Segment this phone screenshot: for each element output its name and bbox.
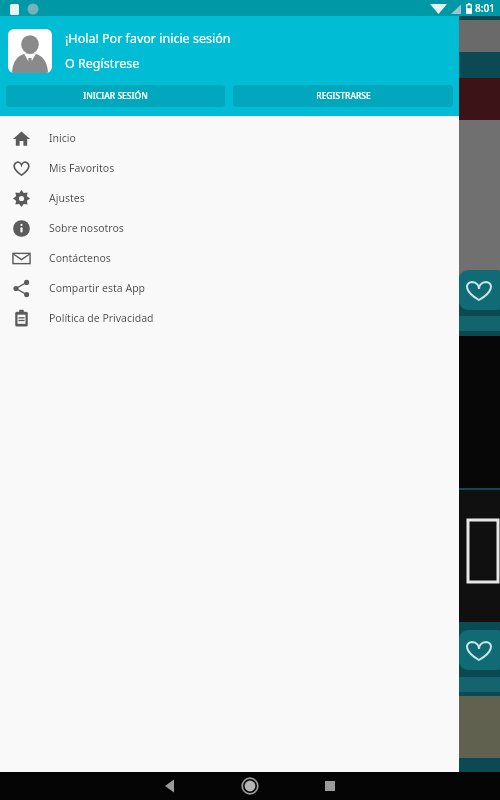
staticText: Inicio — [49, 131, 76, 145]
button[interactable]: REGISTRARSE — [233, 85, 453, 107]
staticText: ¡Hola! Por favor inicie sesión — [65, 30, 231, 47]
button[interactable]: Sobre nosotros — [0, 213, 459, 243]
staticText: Mis Favoritos — [49, 161, 115, 175]
button[interactable]: Contáctenos — [0, 243, 459, 273]
staticText: REGISTRARSE — [316, 90, 371, 102]
staticText: Ajustes — [49, 191, 85, 205]
button[interactable]: Compartir esta App — [0, 273, 459, 303]
staticText: INICIAR SESIÓN — [83, 90, 148, 102]
staticText: Compartir esta App — [49, 281, 146, 295]
button[interactable]: Inicio — [0, 123, 459, 153]
button[interactable]: INICIAR SESIÓN — [6, 85, 225, 107]
staticText: Política de Privacidad — [49, 311, 154, 325]
staticText: Contáctenos — [49, 251, 111, 265]
staticText: Sobre nosotros — [49, 221, 124, 235]
button[interactable]: Mis Favoritos — [0, 153, 459, 183]
staticText: 8:01 — [475, 1, 495, 15]
button[interactable]: Política de Privacidad — [0, 303, 459, 333]
button[interactable]: Ajustes — [0, 183, 459, 213]
staticText: O Regístrese — [65, 55, 140, 72]
